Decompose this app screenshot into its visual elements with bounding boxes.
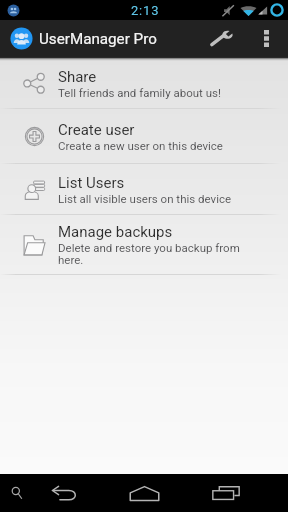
- staticText: 2:13: [131, 3, 160, 18]
- button[interactable]: Manage backups: [0, 215, 288, 274]
- button[interactable]: More options: [244, 20, 288, 57]
- staticText: List all visible users on this device: [58, 192, 232, 205]
- button[interactable]: Back: [50, 474, 78, 512]
- staticText: Delete and restore you backup from here.: [58, 241, 245, 267]
- staticText: List Users: [58, 174, 125, 192]
- staticText: Create a new user on this device: [58, 139, 223, 152]
- button[interactable]: List Users: [0, 164, 288, 214]
- button[interactable]: Search: [0, 474, 33, 512]
- staticText: UserManager Pro: [39, 30, 157, 48]
- button[interactable]: Recents: [211, 474, 240, 512]
- staticText: Share: [58, 68, 97, 86]
- button[interactable]: Home: [128, 474, 160, 512]
- button[interactable]: Share: [0, 58, 288, 108]
- button[interactable]: Create user: [0, 109, 288, 163]
- staticText: Create user: [58, 121, 135, 139]
- staticText: Manage backups: [58, 223, 173, 241]
- button[interactable]: Settings: [198, 20, 244, 57]
- staticText: Tell friends and family about us!: [58, 86, 221, 99]
